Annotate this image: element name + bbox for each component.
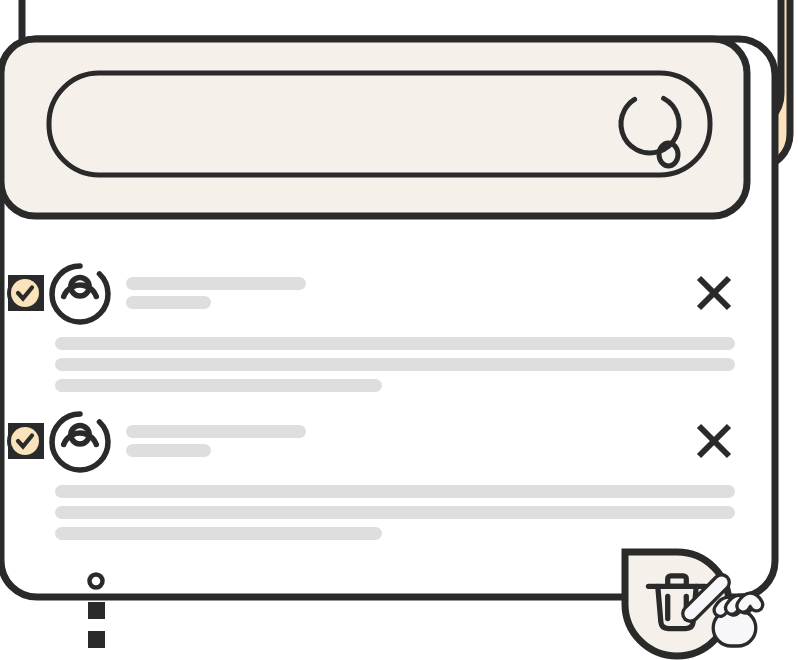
button[interactable] bbox=[1, 263, 775, 403]
button[interactable]: Search bbox=[49, 73, 710, 175]
button[interactable]: Delete bbox=[625, 552, 729, 656]
button[interactable] bbox=[1, 411, 775, 551]
